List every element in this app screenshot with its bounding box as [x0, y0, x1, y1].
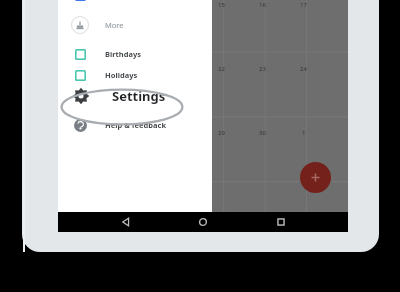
button[interactable]: Back	[116, 212, 136, 232]
button[interactable]: More	[58, 14, 212, 35]
button[interactable]: Recent apps	[271, 212, 291, 232]
button[interactable]: Settings	[58, 84, 212, 108]
button[interactable]: Create new event	[300, 162, 331, 193]
staticText: 24	[300, 65, 307, 73]
staticText: 23	[259, 65, 266, 73]
staticText: 17	[300, 1, 307, 9]
button[interactable]: Home	[193, 212, 213, 232]
staticText: Holidays	[105, 70, 138, 80]
button[interactable]: Birthdays	[58, 43, 212, 64]
button[interactable]: Holidays	[58, 64, 212, 85]
staticText: 30	[259, 129, 266, 137]
staticText: Birthdays	[105, 49, 141, 59]
staticText: Settings	[112, 87, 166, 105]
button[interactable]: Help & feedback	[58, 114, 212, 135]
staticText: More	[105, 20, 124, 30]
staticText: 15	[218, 1, 225, 9]
staticText: 22	[218, 65, 225, 73]
staticText: 29	[218, 129, 225, 137]
button[interactable]: Reminders	[58, 0, 212, 5]
staticText: 1	[302, 129, 306, 137]
staticText: Help & feedback	[105, 120, 167, 130]
staticText: 16	[259, 1, 266, 9]
